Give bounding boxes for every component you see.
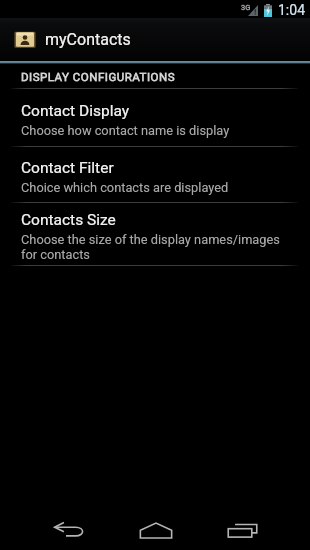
button[interactable]: Home xyxy=(112,510,199,550)
button[interactable]: Recent apps xyxy=(199,510,285,550)
staticText: Contacts Size xyxy=(21,211,116,229)
staticText: 1:04 xyxy=(278,2,305,18)
button[interactable]: Back xyxy=(26,510,112,550)
staticText: DISPLAY CONFIGURATIONS xyxy=(21,70,175,83)
button[interactable]: Contact Display xyxy=(0,89,310,146)
staticText: Contact Display xyxy=(21,102,130,120)
staticText: 3G xyxy=(241,3,251,12)
staticText: Choice which contacts are displayed xyxy=(21,180,229,195)
staticText: Choose the size of the display names/ima… xyxy=(21,232,280,262)
button[interactable]: Contact Filter xyxy=(0,147,310,202)
staticText: Contact Filter xyxy=(21,159,114,177)
button[interactable]: Contacts Size xyxy=(0,203,310,265)
staticText: Choose how contact name is display xyxy=(21,123,230,138)
staticText: myContacts xyxy=(45,30,131,49)
button[interactable]: myContacts xyxy=(0,18,310,61)
